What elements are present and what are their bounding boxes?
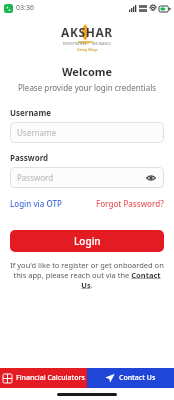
staticText: Financial Calculators <box>16 373 85 383</box>
button[interactable]: Login <box>10 230 164 252</box>
staticText: Welcome <box>0 64 174 79</box>
staticText: AKSHAR <box>61 24 113 40</box>
staticText: Username <box>17 127 56 138</box>
staticText: Giving Wings <box>77 47 98 52</box>
button[interactable]: Forgot Password? <box>96 197 164 210</box>
staticText: Login via OTP <box>10 198 62 209</box>
button[interactable]: Financial Calculators <box>0 368 87 388</box>
staticText: Login <box>74 234 101 248</box>
staticText: 03:36 <box>16 3 34 13</box>
staticText: If you'd like to register or get onboard… <box>10 260 164 290</box>
staticText: Password <box>17 172 54 183</box>
button[interactable]: Username <box>10 122 164 143</box>
button[interactable]: Show password <box>145 172 157 184</box>
staticText: Contact Us <box>119 373 156 383</box>
button[interactable]: Password <box>10 167 164 188</box>
staticText: Please provide your login credentials <box>0 82 174 93</box>
button[interactable]: Contact Us <box>87 368 174 388</box>
staticText: Password <box>10 152 49 163</box>
staticText: Forgot Password? <box>96 198 164 209</box>
staticText: INVESTMENTS · INSURANCE <box>63 42 112 46</box>
button[interactable]: Login via OTP <box>10 197 62 210</box>
staticText: Username <box>10 107 51 118</box>
